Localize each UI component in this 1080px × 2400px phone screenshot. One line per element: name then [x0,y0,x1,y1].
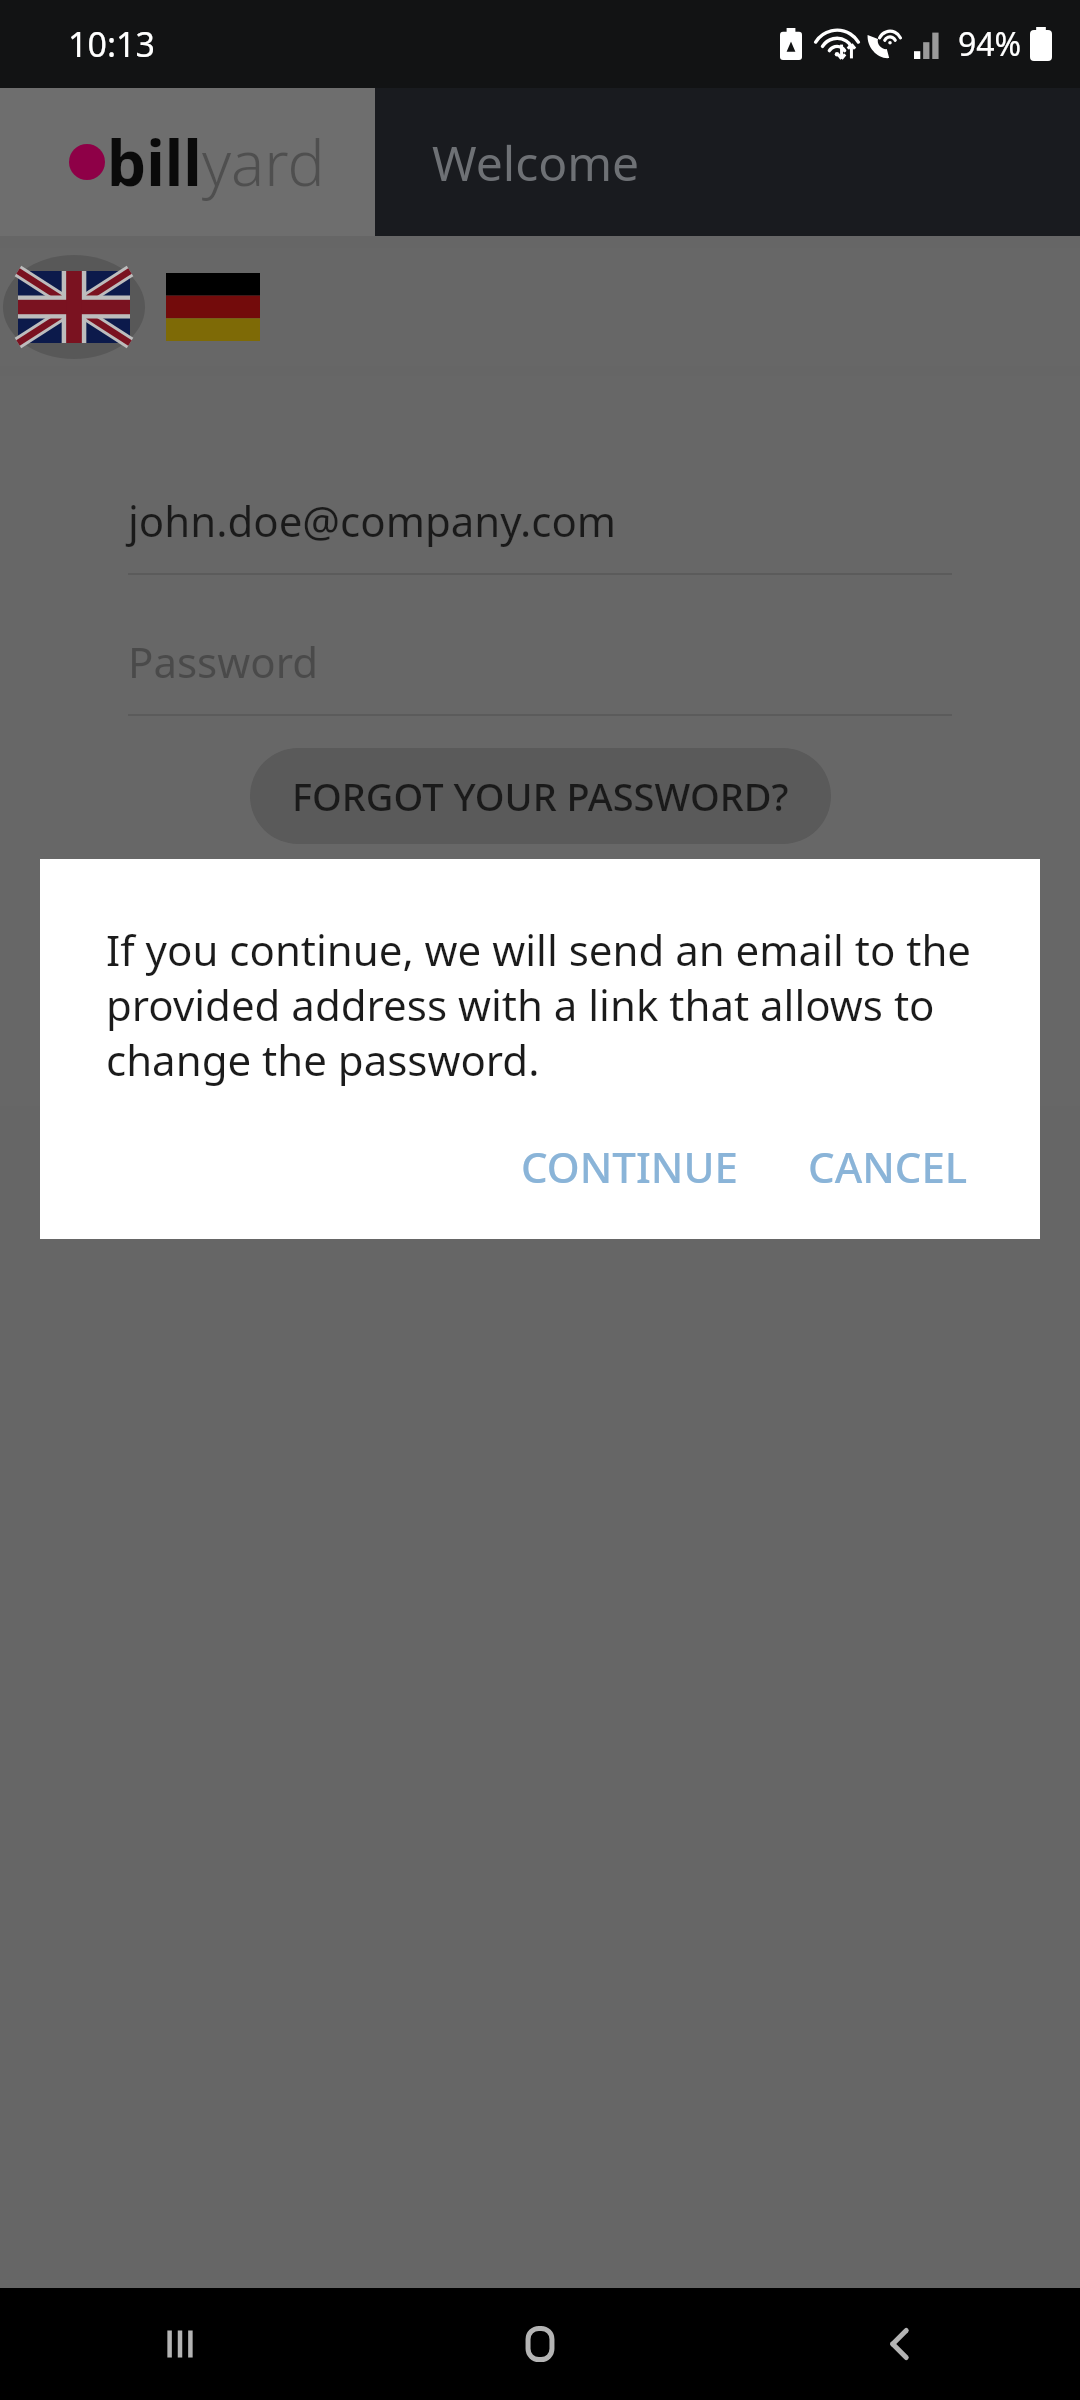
button[interactable]: billyard logo [0,88,375,236]
staticText: If you continue, we will send an email t… [106,921,974,1088]
button[interactable]: Back [720,2288,1080,2400]
staticText: 94% [958,22,1022,66]
staticText: bill [107,120,202,204]
staticText: john.doe@company.com [128,492,617,549]
button[interactable]: CANCEL [784,1116,992,1217]
staticText: 10:13 [68,21,155,67]
button[interactable]: Recents [0,2288,360,2400]
staticText: Welcome [432,130,640,195]
staticText: FORGOT YOUR PASSWORD? [292,770,789,822]
button[interactable]: English [0,248,148,366]
staticText: CANCEL [808,1138,968,1195]
button[interactable]: Home [360,2288,720,2400]
button[interactable]: FORGOT YOUR PASSWORD? [250,748,831,844]
button[interactable]: CONTINUE [497,1116,762,1217]
staticText: Password [128,633,318,690]
button[interactable]: Password [128,633,952,716]
button[interactable]: john.doe@company.com [128,492,952,575]
staticText: yard [202,120,325,204]
button[interactable]: Deutsch [148,248,278,366]
staticText: CONTINUE [521,1138,738,1195]
button[interactable]: CHANGE PASSWORD [299,858,782,942]
